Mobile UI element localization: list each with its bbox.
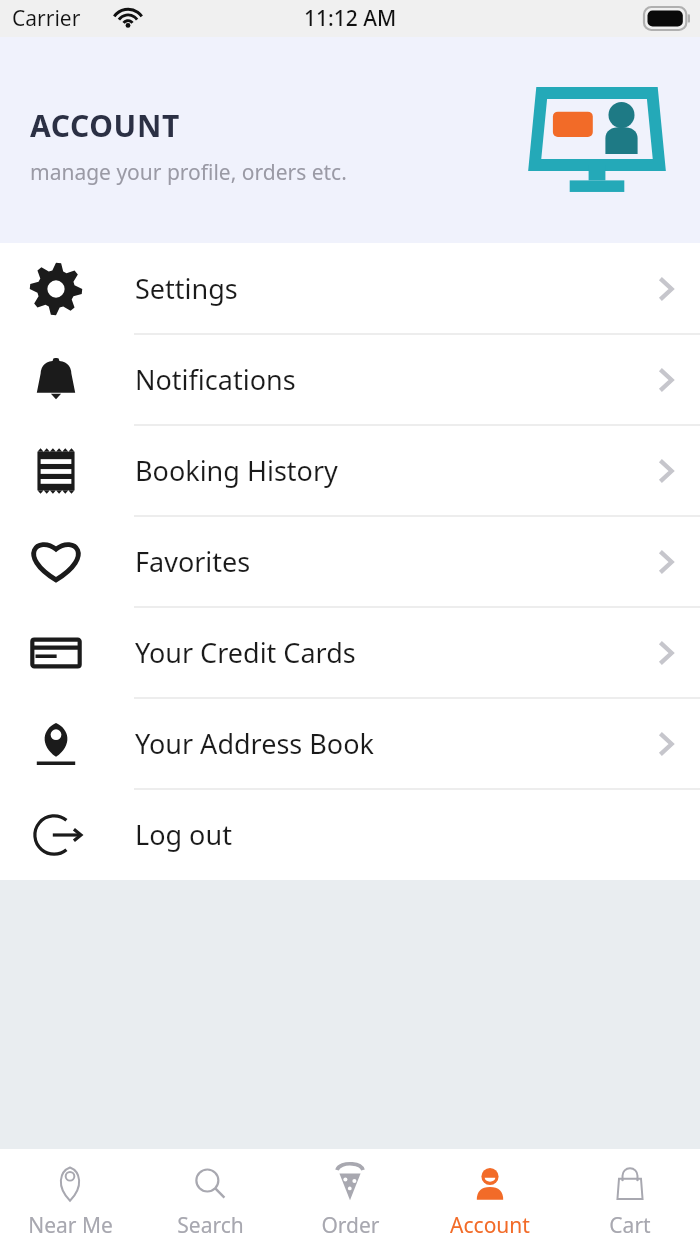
button[interactable]: Your Credit Cards xyxy=(0,607,700,698)
button[interactable]: Booking History xyxy=(0,425,700,516)
staticText: manage your profile, orders etc. xyxy=(30,158,347,187)
staticText: ACCOUNT xyxy=(30,105,180,146)
staticText: Your Address Book xyxy=(135,725,374,762)
button[interactable]: Your Address Book xyxy=(0,698,700,789)
staticText: Your Credit Cards xyxy=(135,634,356,671)
staticText: Notifications xyxy=(135,361,296,398)
staticText: Search xyxy=(177,1211,244,1240)
button[interactable]: Near Me xyxy=(0,1149,140,1244)
button[interactable]: Favorites xyxy=(0,516,700,607)
staticText: Favorites xyxy=(135,543,251,580)
button[interactable]: Search xyxy=(140,1149,280,1244)
staticText: Settings xyxy=(135,270,238,307)
button[interactable]: Log out xyxy=(0,789,700,880)
button[interactable]: Settings xyxy=(0,243,700,334)
staticText: Booking History xyxy=(135,452,338,489)
staticText: Account xyxy=(450,1211,530,1240)
staticText: 11:12 AM xyxy=(304,4,397,33)
staticText: Order xyxy=(321,1211,380,1240)
button[interactable]: Account xyxy=(420,1149,560,1244)
button[interactable]: Cart xyxy=(560,1149,700,1244)
staticText: Cart xyxy=(609,1211,651,1240)
staticText: Log out xyxy=(135,816,232,853)
staticText: Carrier xyxy=(12,4,81,33)
button[interactable]: Notifications xyxy=(0,334,700,425)
staticText: Near Me xyxy=(28,1211,113,1240)
button[interactable]: Order xyxy=(280,1149,420,1244)
